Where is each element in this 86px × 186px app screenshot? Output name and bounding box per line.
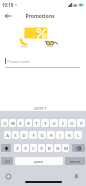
staticText: U bbox=[52, 120, 56, 126]
button[interactable]: W bbox=[9, 119, 16, 127]
staticText: M bbox=[64, 145, 68, 151]
button[interactable]: delete bbox=[72, 144, 85, 152]
button[interactable]: D bbox=[20, 131, 28, 139]
button[interactable]: F bbox=[29, 131, 37, 139]
staticText: Q bbox=[3, 120, 7, 126]
button[interactable]: X bbox=[22, 144, 29, 152]
staticText: APPLY bbox=[34, 106, 47, 112]
button[interactable]: E bbox=[17, 119, 24, 127]
staticText: Promotions bbox=[0, 13, 83, 20]
button[interactable]: T bbox=[33, 119, 40, 127]
staticText: F bbox=[32, 132, 35, 138]
button[interactable]: Q bbox=[1, 119, 8, 127]
button[interactable]: return bbox=[65, 157, 85, 165]
staticText: space bbox=[34, 159, 44, 164]
staticText: O bbox=[70, 120, 74, 126]
button[interactable]: P bbox=[77, 119, 85, 127]
button[interactable]: A bbox=[4, 131, 11, 139]
staticText: E bbox=[19, 120, 22, 126]
staticText: R bbox=[27, 120, 30, 126]
staticText: Promo code bbox=[7, 59, 30, 64]
button[interactable]: K bbox=[65, 131, 73, 139]
staticText: P bbox=[80, 120, 83, 126]
staticText: T bbox=[35, 120, 38, 126]
button[interactable]: Emoji bbox=[4, 172, 12, 180]
staticText: I bbox=[62, 120, 64, 126]
staticText: H bbox=[49, 132, 53, 138]
button[interactable]: Z bbox=[14, 144, 21, 152]
staticText: B bbox=[48, 145, 51, 151]
button[interactable]: C bbox=[30, 144, 37, 152]
staticText: L bbox=[77, 132, 80, 138]
button[interactable]: M bbox=[62, 144, 69, 152]
staticText: Y bbox=[44, 120, 47, 126]
button[interactable]: U bbox=[50, 119, 58, 127]
button[interactable]: O bbox=[68, 119, 76, 127]
staticText: J bbox=[59, 132, 61, 138]
staticText: Z bbox=[16, 145, 19, 151]
button[interactable]: space bbox=[15, 157, 63, 165]
button[interactable]: H bbox=[47, 131, 55, 139]
button[interactable]: G bbox=[38, 131, 46, 139]
staticText: S bbox=[14, 132, 17, 138]
staticText: N bbox=[56, 145, 60, 151]
button[interactable]: R bbox=[25, 119, 32, 127]
staticText: D bbox=[22, 132, 26, 138]
staticText: C bbox=[32, 145, 35, 151]
button[interactable]: I bbox=[59, 119, 67, 127]
button[interactable]: Y bbox=[41, 119, 49, 127]
staticText: G bbox=[40, 132, 44, 138]
staticText: 123 bbox=[4, 159, 10, 164]
staticText: return bbox=[70, 159, 81, 164]
button[interactable]: N bbox=[54, 144, 61, 152]
button[interactable]: V bbox=[38, 144, 45, 152]
staticText: 10:19 bbox=[2, 2, 14, 8]
staticText: W bbox=[11, 120, 15, 126]
button[interactable]: Back bbox=[2, 10, 14, 22]
staticText: V bbox=[40, 145, 43, 151]
staticText: X bbox=[24, 145, 27, 151]
button[interactable]: B bbox=[46, 144, 53, 152]
staticText: A bbox=[6, 132, 9, 138]
staticText: K bbox=[68, 132, 71, 138]
button[interactable]: S bbox=[12, 131, 19, 139]
button[interactable]: J bbox=[56, 131, 64, 139]
button[interactable]: APPLY bbox=[0, 104, 86, 113]
button[interactable]: L bbox=[74, 131, 82, 139]
button[interactable]: shift bbox=[1, 144, 11, 152]
button[interactable]: Dictation bbox=[72, 172, 80, 180]
button[interactable]: 123 bbox=[1, 157, 13, 165]
